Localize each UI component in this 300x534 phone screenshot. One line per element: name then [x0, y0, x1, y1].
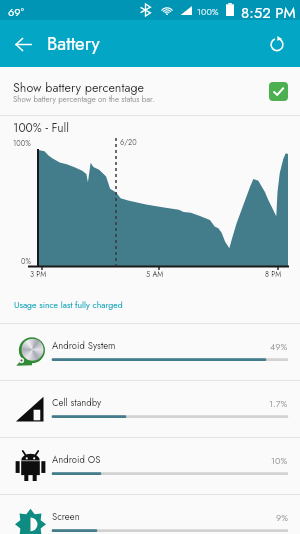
staticText: Show battery percentage on the status ba…	[13, 94, 155, 105]
staticText: 6/20	[120, 137, 137, 148]
staticText: Screen	[52, 510, 80, 524]
staticText: 1.7%	[269, 397, 288, 410]
staticText: 8 PM	[265, 269, 282, 280]
button[interactable]: Android OS	[0, 437, 300, 494]
staticText: 9%	[276, 511, 288, 524]
staticText: 100%	[13, 138, 31, 149]
staticText: 49%	[270, 340, 288, 353]
staticText: 10%	[271, 454, 288, 467]
button[interactable]: Show battery percentage	[0, 67, 300, 116]
button[interactable]: Usage since last fully charged	[0, 289, 300, 323]
staticText: Show battery percentage	[13, 79, 145, 97]
staticText: Battery	[47, 30, 100, 57]
staticText: 100%	[197, 5, 219, 18]
staticText: Cell standby	[52, 396, 102, 410]
staticText: Usage since last fully charged	[14, 299, 123, 312]
staticText: 8:52 PM	[241, 2, 296, 22]
staticText: 5 AM	[146, 269, 164, 280]
button[interactable]: Screen	[0, 494, 300, 534]
staticText: 0%	[21, 256, 31, 267]
staticText: Android System	[52, 339, 116, 353]
button[interactable]: Cell standby	[0, 380, 300, 437]
staticText: 3 PM	[30, 269, 47, 280]
button[interactable]: Refresh	[259, 26, 295, 62]
button[interactable]: Back	[5, 26, 41, 62]
staticText: 69°	[8, 4, 24, 20]
button[interactable]: Android System	[0, 323, 300, 380]
staticText: Android OS	[52, 453, 101, 467]
staticText: 100% - Full	[13, 119, 70, 136]
